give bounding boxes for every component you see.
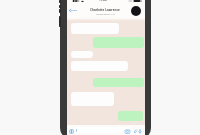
button[interactable]: Message input [75,127,132,133]
staticText: 11:28 [99,0,107,2]
button[interactable]: Camera [125,129,130,134]
staticText: last seen today at 11:03 [96,13,115,15]
button[interactable] [71,51,93,58]
button[interactable]: Chats [69,9,78,12]
button[interactable]: Attach [69,129,74,134]
staticText: Chats [71,9,78,12]
button[interactable] [118,111,143,121]
staticText: Charlotte Lawrence [90,8,120,12]
button[interactable]: Contact profile [131,6,141,16]
button[interactable]: Attach file [133,129,137,133]
button[interactable]: Voice message [138,129,142,134]
button[interactable] [93,37,144,48]
button[interactable] [93,78,144,87]
